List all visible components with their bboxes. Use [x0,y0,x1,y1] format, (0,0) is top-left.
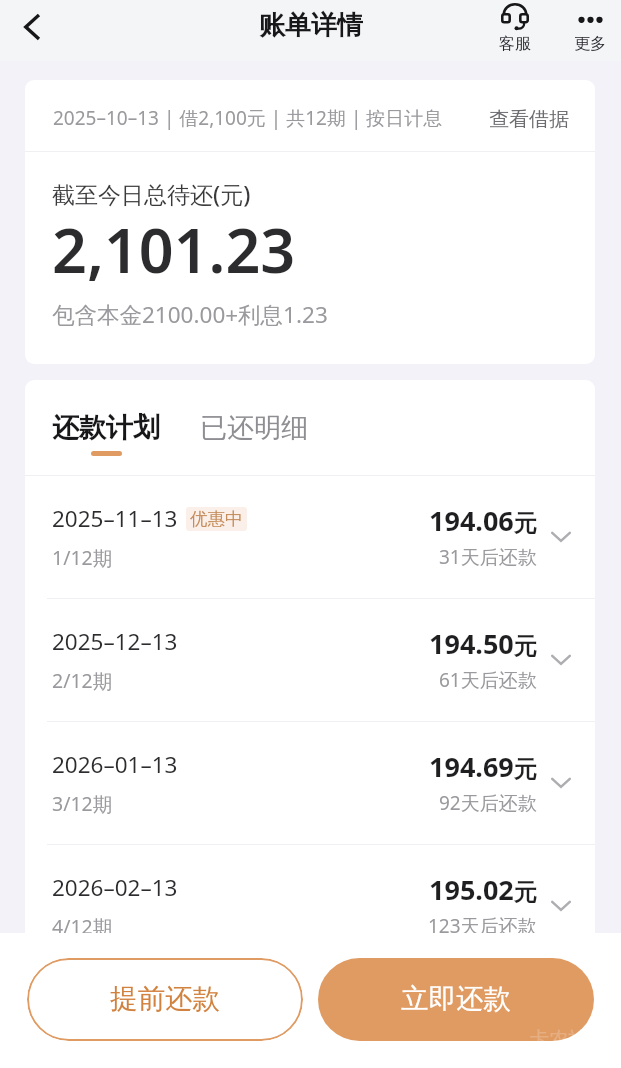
staticText: 151天后还款 [428,1025,537,1051]
button[interactable]: Back [0,0,62,61]
staticText: 194.69元 [429,748,537,785]
staticText: 2026–02–13 [52,872,178,903]
button[interactable]: 2025–12–13 [25,599,595,721]
staticText: 5/12期 [52,1025,113,1052]
staticText: 账单详情 [259,9,363,42]
staticText: 31天后还款 [439,544,537,570]
staticText: 2,101.23 [52,208,296,291]
staticText: 卡农社 [530,1027,587,1051]
staticText: 195.21元 [429,983,537,1020]
staticText: 客服 [499,34,531,54]
staticText: 2025–12–13 [52,626,178,657]
button[interactable]: 更多 [559,1,621,62]
staticText: 2025–10–13 | 借2,100元 | 共12期 | 按日计息 [53,105,443,131]
staticText: 查看借据 [489,107,569,132]
button[interactable]: 还款计划 [52,380,160,456]
button[interactable]: 2025–11–13 [25,476,595,598]
staticText: 还款计划 [52,411,160,445]
button[interactable]: 2026–03–13 [25,968,595,1068]
button[interactable]: 提前还款 [27,958,303,1041]
staticText: 优惠中 [190,508,243,530]
staticText: 1/12期 [52,544,113,571]
staticText: 截至今日总待还(元) [52,178,251,209]
staticText: 3/12期 [52,790,113,817]
staticText: 92天后还款 [439,790,537,816]
staticText: 61天后还款 [439,667,537,693]
staticText: 包含本金2100.00+利息1.23 [52,299,328,330]
staticText: 194.06元 [429,502,537,539]
staticText: 2026–01–13 [52,749,178,780]
staticText: 4/12期 [52,913,113,940]
staticText: 已还明细 [200,411,308,445]
staticText: 立即还款 [401,982,511,1017]
staticText: 195.02元 [429,871,537,908]
button[interactable]: 2026–02–13 [25,845,595,967]
staticText: 提前还款 [110,982,220,1017]
staticText: 2025–11–13 [52,503,178,534]
staticText: 2/12期 [52,667,113,694]
staticText: 更多 [574,34,606,54]
button[interactable]: 2026–01–13 [25,722,595,844]
button[interactable]: 立即还款 [318,958,594,1041]
staticText: 2026–03–13 [52,984,178,1015]
button[interactable]: 查看借据 [489,107,569,132]
staticText: 194.50元 [429,625,537,662]
button[interactable]: 已还明细 [200,380,308,445]
button[interactable]: 客服 [470,1,559,62]
staticText: 123天后还款 [428,913,537,939]
